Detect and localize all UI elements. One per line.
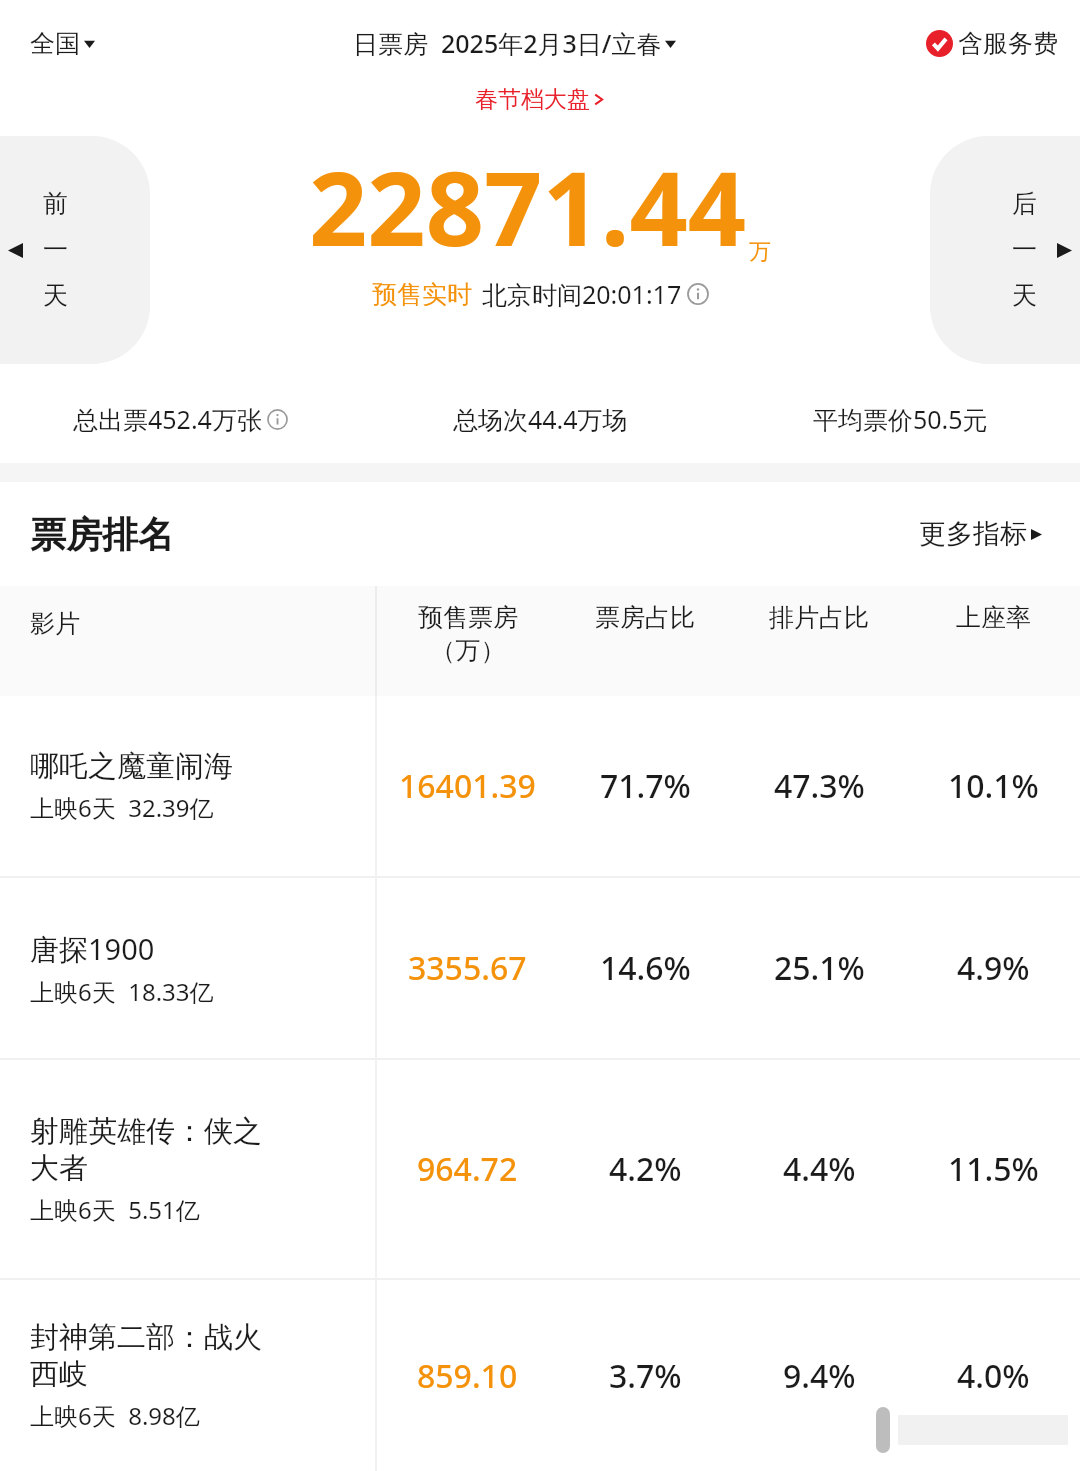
staticText: 春节档大盘 — [475, 85, 590, 114]
staticText: 4.0% — [957, 1354, 1030, 1398]
staticText: 4.4% — [783, 1147, 856, 1191]
button[interactable]: 含服务费 — [918, 22, 1066, 65]
staticText: 上映6天 8.98亿 — [30, 1399, 200, 1432]
staticText: 大者 — [30, 1150, 88, 1187]
staticText: 平均票价50.5元 — [813, 402, 988, 436]
staticText: 预售实时 — [372, 279, 472, 310]
staticText: 859.10 — [417, 1354, 518, 1398]
staticText: 9.4% — [783, 1354, 856, 1398]
button[interactable] — [0, 136, 150, 364]
staticText: 封神第二部：战火 — [30, 1319, 262, 1356]
staticText: 3355.67 — [408, 946, 527, 990]
staticText: 日票房 2025年2月3日/立春 — [353, 26, 662, 60]
staticText: 预售票房 （万） — [418, 602, 518, 666]
staticText: 10.1% — [948, 764, 1039, 808]
staticText: 更多指标 — [919, 517, 1027, 551]
staticText: 上映6天 5.51亿 — [30, 1193, 200, 1226]
other: 说明 — [687, 283, 709, 305]
staticText: 全国 — [30, 28, 80, 59]
staticText: 总场次44.4万场 — [453, 402, 628, 436]
staticText: 含服务费 — [958, 28, 1058, 59]
staticText: 后 一 天 — [1012, 188, 1037, 312]
staticText: 上映6天 32.39亿 — [30, 791, 214, 824]
staticText: 4.9% — [957, 946, 1030, 990]
staticText: 票房排名 — [30, 512, 174, 557]
staticText: 总出票452.4万张 — [73, 402, 262, 436]
staticText: 25.1% — [774, 946, 865, 990]
staticText: 影片 — [30, 608, 80, 639]
staticText: 排片占比 — [769, 602, 869, 633]
staticText: 射雕英雄传：侠之 — [30, 1113, 262, 1150]
button[interactable]: 哪吒之魔童闹海 — [0, 696, 1080, 876]
button[interactable]: 全国 — [14, 22, 111, 65]
staticText: 北京时间20:01:17 — [482, 277, 682, 311]
staticText: 11.5% — [948, 1147, 1039, 1191]
staticText: 14.6% — [600, 946, 691, 990]
staticText: 前 一 天 — [43, 188, 68, 312]
staticText: 哪吒之魔童闹海 — [30, 748, 233, 785]
staticText: 西岐 — [30, 1356, 88, 1393]
staticText: 票房占比 — [595, 602, 695, 633]
staticText: 22871.44 — [309, 137, 747, 276]
staticText: 4.2% — [609, 1147, 682, 1191]
staticText: 唐探1900 — [30, 929, 155, 969]
button[interactable]: 封神第二部：战火 — [0, 1280, 1080, 1471]
other: 说明 — [267, 409, 288, 430]
button[interactable] — [930, 136, 1080, 364]
button[interactable]: 春节档大盘 — [465, 82, 615, 117]
staticText: 964.72 — [417, 1147, 518, 1191]
button[interactable]: 射雕英雄传：侠之 — [0, 1060, 1080, 1278]
button[interactable]: 更多指标 — [911, 509, 1050, 559]
staticText: 16401.39 — [399, 764, 536, 808]
other: 含服务费 — [926, 30, 953, 57]
staticText: 3.7% — [609, 1354, 682, 1398]
staticText: 47.3% — [774, 764, 865, 808]
staticText: 上映6天 18.33亿 — [30, 975, 214, 1008]
staticText: 万 — [749, 238, 771, 266]
staticText: 上座率 — [956, 602, 1031, 633]
staticText: 71.7% — [600, 764, 691, 808]
button[interactable]: 唐探1900 — [0, 878, 1080, 1058]
button[interactable]: 日票房 2025年2月3日/立春 — [349, 20, 680, 66]
